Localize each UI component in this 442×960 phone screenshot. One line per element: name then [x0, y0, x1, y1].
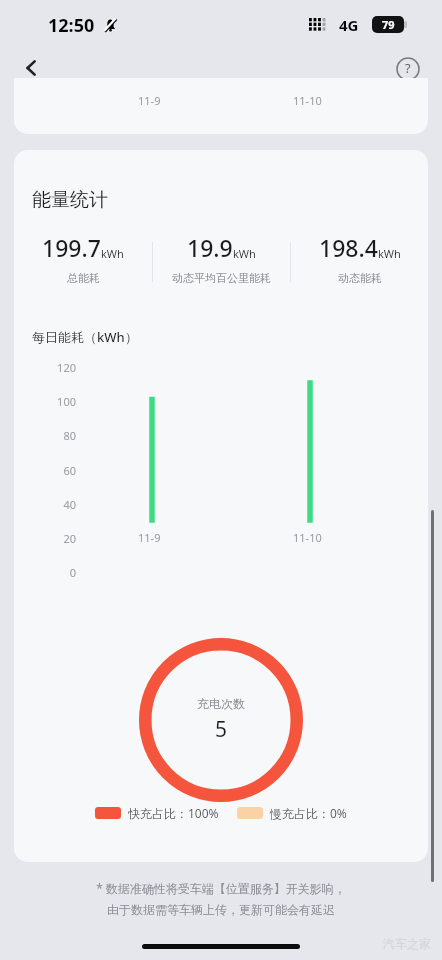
staticText: 12:50 [48, 13, 95, 38]
staticText: ? [405, 59, 411, 77]
button[interactable]: Help [385, 46, 431, 92]
staticText: 120 [44, 360, 76, 375]
staticText: 40 [44, 497, 76, 512]
staticText: kWh [101, 246, 124, 261]
staticText: kWh [378, 246, 401, 261]
staticText: 能量统计 [32, 188, 108, 212]
staticText: 11-9 [138, 93, 161, 108]
staticText: 充电次数 [197, 696, 245, 711]
staticText: 79 [382, 17, 395, 32]
staticText: 11-10 [293, 93, 322, 108]
staticText: 19.9 [187, 232, 233, 263]
staticText: 动态能耗 [338, 271, 382, 285]
staticText: 11-9 [138, 530, 161, 545]
staticText: 199.7 [42, 232, 101, 263]
staticText: 4G [339, 15, 359, 35]
staticText: 总能耗 [67, 271, 100, 285]
staticText: 慢充占比：0% [270, 805, 347, 821]
staticText: 80 [44, 428, 76, 443]
staticText: kWh [233, 246, 256, 261]
staticText: 5 [215, 715, 228, 744]
staticText: 20 [44, 531, 76, 546]
staticText: 11-10 [293, 530, 322, 545]
staticText: 100 [44, 394, 76, 409]
staticText: 198.4 [319, 232, 378, 263]
staticText: 动态平均百公里能耗 [172, 271, 271, 285]
staticText: 60 [44, 463, 76, 478]
button[interactable]: Back [8, 44, 56, 92]
staticText: 每日能耗（kWh） [32, 328, 138, 346]
staticText: 快充占比：100% [128, 805, 219, 821]
staticText: * 数据准确性将受车端【位置服务】开关影响， 由于数据需等车辆上传，更新可能会有… [36, 880, 406, 918]
staticText: 汽车之家 [383, 936, 431, 951]
staticText: 0 [44, 565, 76, 580]
